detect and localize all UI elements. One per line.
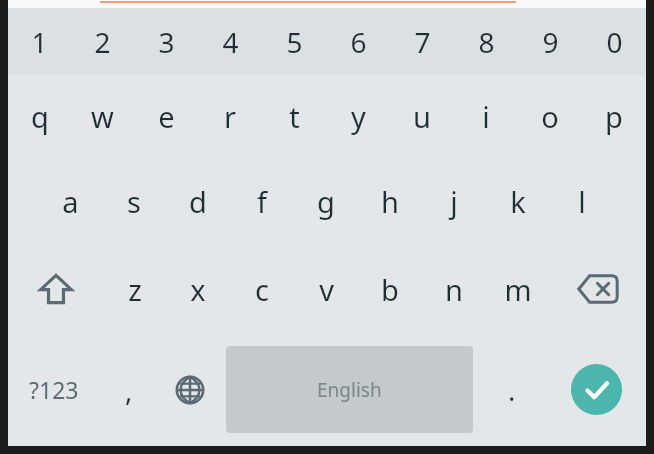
staticText: 1 [31,23,48,61]
button[interactable]: English [226,346,473,433]
button[interactable]: 7 [390,8,454,75]
staticText: x [190,270,206,309]
staticText: o [541,97,559,136]
button[interactable]: v [294,245,358,333]
button[interactable]: o [518,75,582,157]
staticText: w [91,97,114,136]
staticText: l [578,182,586,221]
staticText: 0 [606,23,623,61]
button[interactable]: b [358,245,422,333]
button[interactable]: j [422,157,486,245]
button[interactable]: q [8,75,71,157]
button[interactable]: 4 [198,8,262,75]
staticText: i [482,97,490,136]
button[interactable]: t [262,75,326,157]
button[interactable]: g [294,157,358,245]
button[interactable]: 5 [262,8,326,75]
button[interactable]: d [166,157,230,245]
staticText: d [189,182,207,221]
staticText: . [508,371,516,409]
staticText: p [605,97,623,136]
staticText: 2 [94,23,111,61]
button[interactable]: 0 [582,8,646,75]
staticText: m [504,270,532,309]
button[interactable]: y [326,75,390,157]
staticText: 8 [478,23,495,61]
button[interactable]: u [390,75,454,157]
staticText: a [62,182,79,221]
button[interactable]: Change language [158,333,222,446]
button[interactable]: e [134,75,198,157]
button[interactable]: w [71,75,134,157]
staticText: ?123 [29,374,79,405]
staticText: 9 [542,23,559,61]
button[interactable]: h [358,157,422,245]
button[interactable]: r [198,75,262,157]
staticText: h [381,182,399,221]
button[interactable]: 2 [71,8,134,75]
staticText: 3 [158,23,175,61]
staticText: b [381,270,399,309]
button[interactable]: a [39,157,102,245]
button[interactable]: Shift [8,245,103,333]
button[interactable]: . [477,333,547,446]
button[interactable]: 6 [326,8,390,75]
button[interactable]: x [166,245,230,333]
staticText: s [127,182,141,221]
button[interactable]: c [230,245,294,333]
button[interactable]: z [103,245,166,333]
staticText: u [413,97,431,136]
button[interactable]: 1 [8,8,71,75]
staticText: g [317,182,335,221]
staticText: q [31,97,49,136]
staticText: r [224,97,236,136]
staticText: , [125,371,133,409]
button[interactable]: , [100,333,158,446]
button[interactable]: k [486,157,550,245]
button[interactable]: p [582,75,646,157]
button[interactable]: s [102,157,166,245]
staticText: English [317,377,382,403]
button[interactable]: 3 [134,8,198,75]
button[interactable]: 9 [518,8,582,75]
button[interactable]: f [230,157,294,245]
button[interactable]: l [550,157,614,245]
staticText: c [255,270,269,309]
staticText: k [510,182,526,221]
staticText: v [319,270,334,309]
staticText: y [351,97,366,136]
button[interactable]: m [486,245,550,333]
button[interactable]: Backspace [550,245,646,333]
staticText: 6 [350,23,367,61]
button[interactable]: ?123 [8,333,100,446]
button[interactable]: 8 [454,8,518,75]
staticText: 7 [414,23,431,61]
button[interactable]: Enter [547,333,646,446]
staticText: j [450,182,458,221]
staticText: n [445,270,463,309]
staticText: f [257,182,267,221]
staticText: 4 [222,23,239,61]
staticText: e [158,97,175,136]
button[interactable]: i [454,75,518,157]
staticText: t [289,97,300,136]
button[interactable]: n [422,245,486,333]
staticText: 5 [286,23,303,61]
staticText: z [128,270,142,309]
